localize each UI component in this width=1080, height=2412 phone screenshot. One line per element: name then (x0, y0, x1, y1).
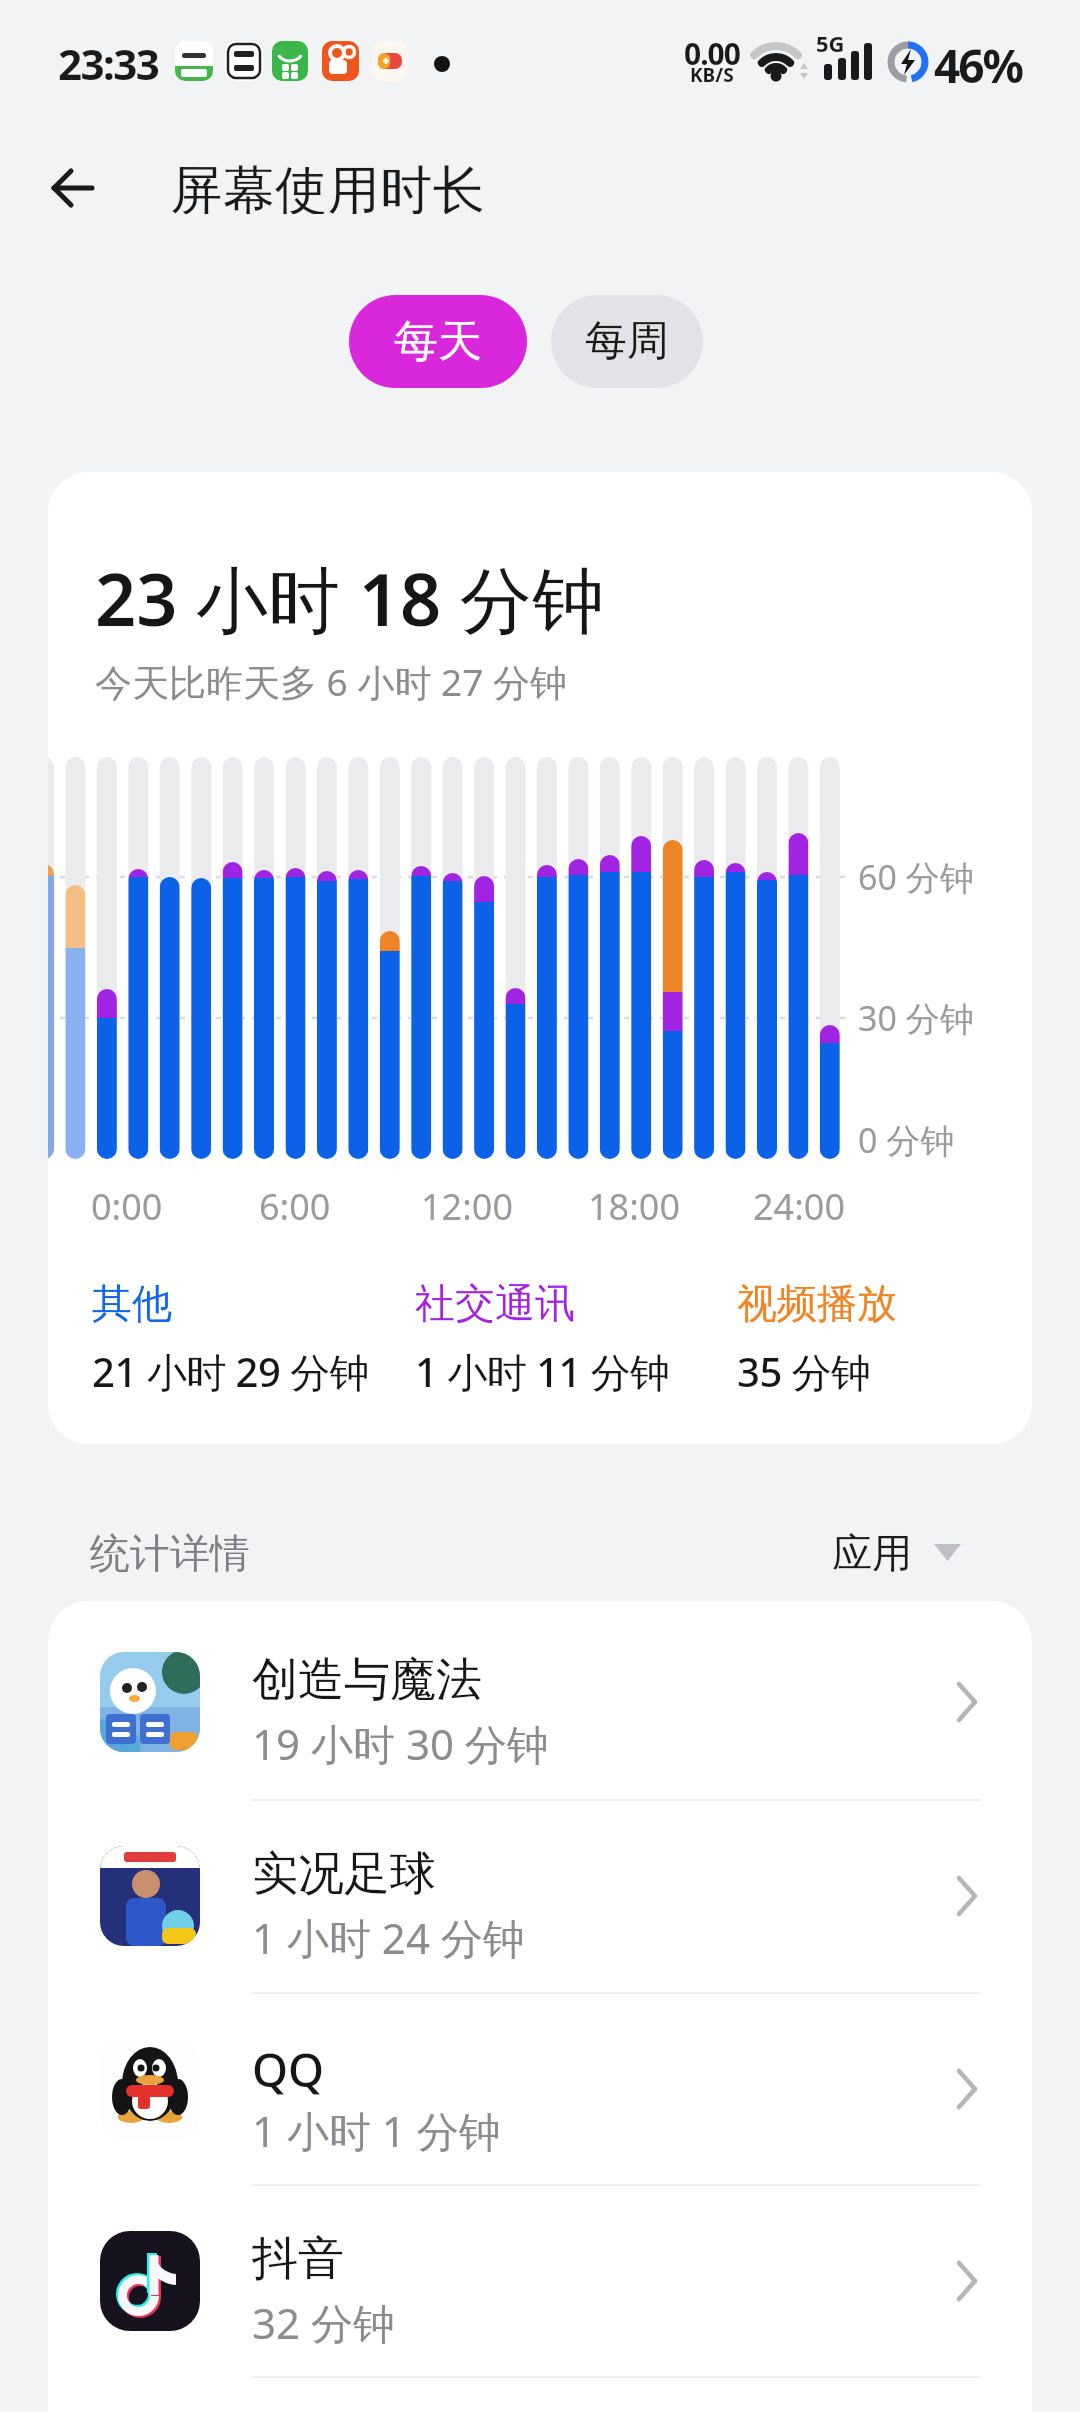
staticText: 32 分钟 (252, 2294, 395, 2348)
staticText: 屏幕使用时长 (170, 158, 485, 214)
button[interactable]: 应用 (810, 1520, 980, 1586)
staticText: 社交通讯 (415, 1278, 575, 1326)
staticText: 1 小时 24 分钟 (252, 1909, 525, 1963)
staticText: 视频播放 (737, 1278, 897, 1326)
staticText: 其他 (92, 1278, 172, 1326)
staticText: 23 小时 18 分钟 (95, 549, 604, 641)
staticText: 19 小时 30 分钟 (252, 1715, 549, 1769)
staticText: 今天比昨天多 6 小时 27 分钟 (95, 656, 567, 702)
button[interactable]: 创造与魔法 (48, 1605, 1032, 1798)
staticText: 23:33 (58, 35, 159, 92)
staticText: 应用 (832, 1528, 912, 1578)
staticText: 60 分钟 (858, 854, 974, 900)
staticText: 5G (816, 28, 845, 58)
staticText: 0.00 (684, 33, 740, 74)
staticText: 统计详情 (90, 1528, 250, 1578)
button[interactable]: QQ (48, 1992, 1032, 2185)
staticText: QQ (252, 2038, 325, 2096)
staticText: 24:00 (753, 1182, 846, 1226)
staticText: 30 分钟 (858, 995, 974, 1041)
staticText: 1 小时 11 分钟 (415, 1344, 670, 1396)
staticText: KB/S (690, 62, 734, 82)
staticText: 每天 (394, 314, 482, 369)
staticText: 35 分钟 (737, 1344, 871, 1396)
staticText: 1 小时 1 分钟 (252, 2102, 501, 2156)
button[interactable]: 每周 (551, 295, 703, 388)
staticText: 0:00 (91, 1182, 163, 1226)
staticText: 12:00 (421, 1182, 514, 1226)
button[interactable]: 实况足球 (48, 1799, 1032, 1992)
staticText: 0 分钟 (858, 1117, 955, 1163)
staticText: 46% (934, 34, 1023, 97)
staticText: 21 小时 29 分钟 (92, 1344, 370, 1396)
staticText: 每周 (585, 315, 669, 368)
staticText: 实况足球 (252, 1845, 436, 1903)
button[interactable]: 抖音 (48, 2184, 1032, 2377)
staticText: 抖音 (252, 2230, 344, 2288)
button[interactable]: 每天 (349, 295, 527, 388)
staticText: 6:00 (259, 1182, 331, 1226)
staticText: 18:00 (588, 1182, 681, 1226)
button[interactable] (40, 155, 110, 221)
staticText: 创造与魔法 (252, 1651, 482, 1709)
